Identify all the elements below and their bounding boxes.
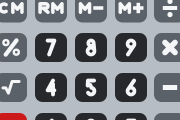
button[interactable]: Clear [0, 113, 27, 120]
button[interactable]: Recall memory [35, 0, 67, 22]
button[interactable]: Memory minus [75, 0, 107, 22]
button[interactable]: Multiply [154, 33, 180, 62]
button[interactable]: Subtract [154, 73, 180, 102]
button[interactable]: 2 [75, 113, 107, 120]
button[interactable]: 5 [75, 73, 107, 102]
button[interactable]: 7 [35, 33, 67, 62]
button[interactable]: 3 [115, 113, 147, 120]
button[interactable]: Add [154, 113, 180, 120]
button[interactable]: Clear memory [0, 0, 27, 22]
button[interactable]: Percent [0, 33, 27, 62]
button[interactable]: 6 [115, 73, 147, 102]
button[interactable]: 9 [115, 33, 147, 62]
button[interactable]: 1 [35, 113, 67, 120]
button[interactable]: 4 [35, 73, 67, 102]
button[interactable]: 8 [75, 33, 107, 62]
button[interactable]: Memory plus [115, 0, 147, 22]
button[interactable]: Square root [0, 73, 27, 102]
button[interactable]: Divide [154, 0, 180, 22]
